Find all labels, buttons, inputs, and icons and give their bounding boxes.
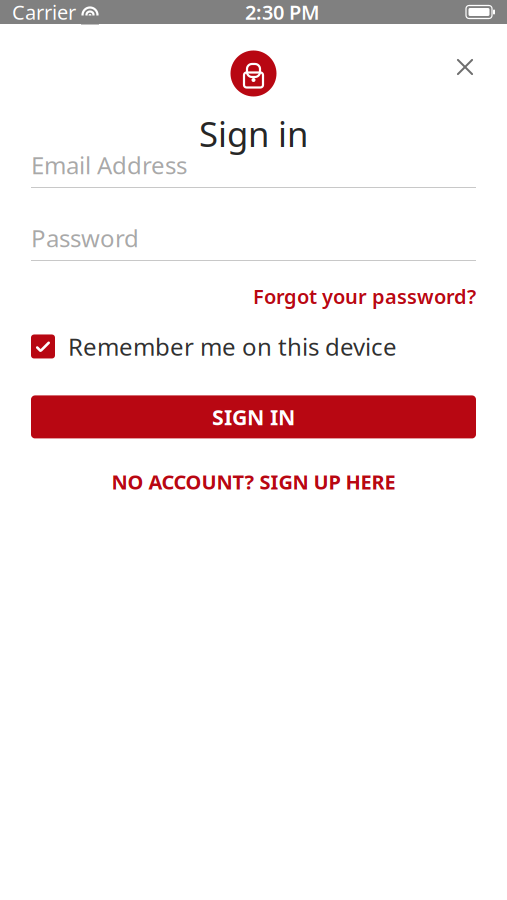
staticText: Forgot your password?: [253, 283, 476, 310]
button[interactable]: Remember me on this device: [31, 327, 397, 366]
button[interactable]: Close: [441, 43, 489, 91]
button[interactable]: SIGN IN: [31, 395, 476, 438]
staticText: Sign in: [199, 110, 308, 156]
staticText: Carrier: [12, 0, 76, 25]
staticText: Password: [31, 222, 139, 254]
staticText: Remember me on this device: [68, 331, 397, 362]
button[interactable]: NO ACCOUNT? SIGN UP HERE: [31, 460, 476, 503]
staticText: SIGN IN: [212, 403, 295, 431]
staticText: Email Address: [31, 149, 187, 181]
staticText: 2:30 PM: [245, 0, 320, 25]
button[interactable]: Forgot your password?: [253, 277, 476, 316]
staticText: NO ACCOUNT? SIGN UP HERE: [111, 468, 395, 495]
